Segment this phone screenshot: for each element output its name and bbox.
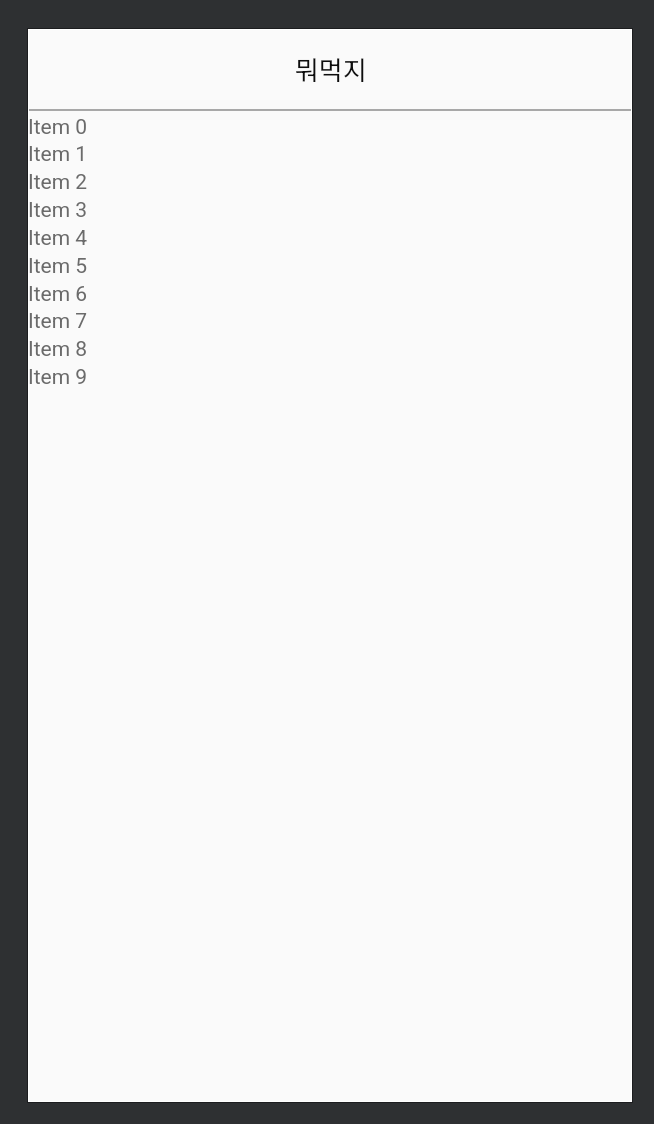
- button[interactable]: Item 6: [29, 280, 631, 308]
- staticText: Item 8: [29, 337, 88, 362]
- button[interactable]: Item 4: [29, 224, 631, 252]
- button[interactable]: Item 1: [29, 140, 631, 168]
- staticText: Item 3: [29, 198, 88, 223]
- button[interactable]: Item 0: [29, 113, 631, 141]
- button[interactable]: Item 3: [29, 196, 631, 224]
- button[interactable]: Item 8: [29, 335, 631, 363]
- button[interactable]: Item 5: [29, 252, 631, 280]
- staticText: Item 2: [29, 170, 88, 195]
- other: 뭐먹지: [29, 30, 631, 109]
- staticText: Item 0: [29, 115, 88, 140]
- staticText: Item 5: [29, 254, 88, 279]
- staticText: Item 6: [29, 282, 88, 307]
- button[interactable]: Item 2: [29, 168, 631, 196]
- staticText: Item 9: [29, 365, 88, 390]
- staticText: Item 7: [29, 309, 88, 334]
- staticText: 뭐먹지: [295, 50, 367, 88]
- staticText: Item 1: [29, 142, 88, 167]
- staticText: Item 4: [29, 226, 88, 251]
- button[interactable]: Item 9: [29, 363, 631, 391]
- button[interactable]: Item 7: [29, 307, 631, 335]
